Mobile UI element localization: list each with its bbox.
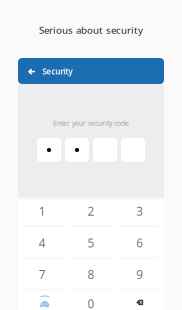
staticText: 6 [136, 235, 143, 251]
staticText: 0 [87, 296, 94, 310]
button[interactable]: 8 [67, 259, 115, 290]
staticText: 9 [136, 267, 143, 283]
staticText: 1 [39, 203, 46, 219]
staticText: 4 [39, 235, 46, 251]
staticText: 8 [87, 267, 94, 283]
staticText: 7 [39, 267, 46, 283]
button[interactable] [115, 290, 164, 310]
staticText: Enter your security code [53, 118, 129, 128]
button[interactable]: 4 [18, 227, 67, 259]
button[interactable]: 6 [115, 227, 164, 259]
button[interactable]: 2 [67, 195, 115, 227]
button[interactable]: 5 [67, 227, 115, 259]
button[interactable]: Security [18, 58, 164, 84]
staticText: Serious about security [39, 23, 143, 37]
button[interactable]: 7 [18, 259, 67, 290]
button[interactable]: 9 [115, 259, 164, 290]
staticText: 2 [87, 203, 94, 219]
button[interactable]: 1 [18, 195, 67, 227]
button[interactable] [18, 290, 67, 310]
button[interactable]: 3 [115, 195, 164, 227]
staticText: Security [42, 66, 72, 77]
staticText: 3 [136, 203, 143, 219]
staticText: 5 [87, 235, 94, 251]
button[interactable]: 0 [67, 290, 115, 310]
